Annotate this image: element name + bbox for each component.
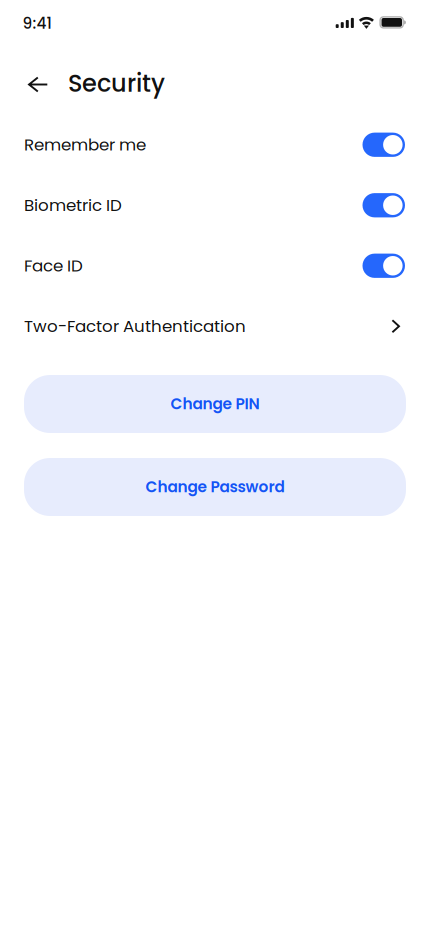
button[interactable]: Biometric ID bbox=[0, 175, 430, 235]
staticText: 9:41 bbox=[22, 13, 51, 34]
button[interactable]: Face ID bbox=[0, 235, 430, 296]
staticText: Biometric ID bbox=[24, 194, 122, 217]
staticText: Remember me bbox=[24, 133, 146, 156]
staticText: Security bbox=[68, 66, 165, 100]
button[interactable]: Biometric ID, on bbox=[362, 193, 405, 217]
staticText: Face ID bbox=[24, 254, 83, 277]
button[interactable]: Back bbox=[23, 69, 53, 99]
staticText: Two-Factor Authentication bbox=[24, 315, 246, 338]
button[interactable]: Remember me bbox=[0, 114, 430, 175]
button[interactable]: Change Password bbox=[24, 458, 406, 516]
staticText: Change PIN bbox=[170, 393, 259, 415]
button[interactable]: Face ID, on bbox=[362, 254, 405, 278]
button[interactable]: Change PIN bbox=[24, 375, 406, 433]
button[interactable]: Remember me, on bbox=[362, 133, 405, 157]
staticText: Change Password bbox=[145, 476, 284, 498]
button[interactable]: Two-Factor Authentication bbox=[0, 296, 430, 356]
